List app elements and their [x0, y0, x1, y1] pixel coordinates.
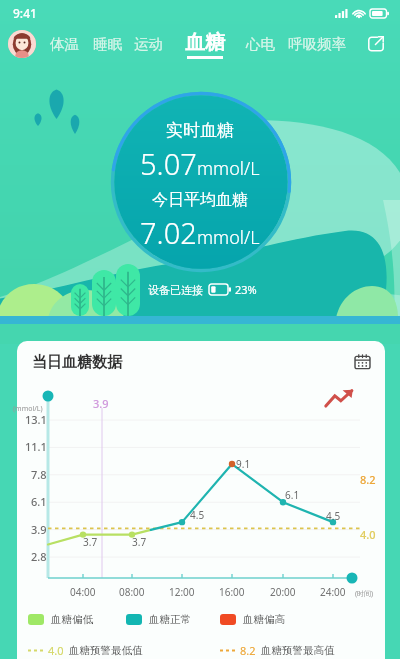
staticText: 08:00	[119, 585, 145, 599]
staticText: 11.1	[25, 439, 47, 454]
staticText: 24:00	[320, 585, 346, 599]
staticText: 5.07	[140, 144, 197, 183]
staticText: mmol/L	[197, 156, 260, 181]
button[interactable]: 血糖正常	[126, 613, 191, 626]
staticText: 心电	[246, 35, 275, 53]
staticText: 运动	[134, 35, 163, 53]
button[interactable]: 8.2	[220, 643, 335, 657]
staticText: 8.2	[360, 472, 376, 487]
staticText: 血糖预警最低值	[69, 644, 143, 657]
staticText: 血糖预警最高值	[261, 644, 335, 657]
staticText: (mmol/L)	[13, 404, 43, 414]
staticText: 3.9	[31, 522, 47, 537]
staticText: 23%	[235, 282, 257, 297]
staticText: 实时血糖	[166, 120, 234, 141]
staticText: 16:00	[219, 585, 245, 599]
staticText: 血糖	[185, 30, 225, 55]
staticText: 6.1	[285, 488, 300, 502]
staticText: 血糖偏高	[243, 613, 285, 626]
staticText: 4.5	[326, 509, 341, 523]
staticText: 3.7	[132, 535, 147, 549]
staticText: 20:00	[270, 585, 296, 599]
staticText: mmol/L	[197, 225, 260, 250]
button[interactable]: Calendar	[350, 349, 374, 373]
staticText: 呼吸频率	[288, 35, 346, 53]
staticText: 8.2	[240, 643, 256, 657]
staticText: 4.0	[360, 527, 376, 542]
button[interactable]: 睡眠	[93, 35, 122, 53]
button[interactable]: 血糖偏低	[28, 613, 93, 626]
button[interactable]: 血糖偏高	[220, 613, 285, 626]
button[interactable]: 血糖	[185, 30, 225, 59]
staticText: 血糖正常	[149, 613, 191, 626]
button[interactable]: 4.0	[28, 643, 143, 657]
staticText: 睡眠	[93, 35, 122, 53]
staticText: 血糖偏低	[51, 613, 93, 626]
staticText: 2.8	[31, 549, 47, 564]
button[interactable]: 心电	[246, 35, 275, 53]
button[interactable]: 体温	[50, 35, 79, 53]
staticText: 6.1	[31, 494, 47, 509]
staticText: 体温	[50, 35, 79, 53]
staticText: (时间)	[355, 589, 374, 599]
staticText: 7.8	[31, 467, 47, 482]
staticText: 9:41	[13, 5, 37, 21]
button[interactable]: Share	[363, 31, 389, 57]
button[interactable]: 运动	[134, 35, 163, 53]
staticText: 7.02	[140, 213, 197, 252]
button[interactable]: 呼吸频率	[288, 35, 346, 53]
staticText: 13.1	[25, 412, 47, 427]
staticText: 4.0	[48, 643, 64, 657]
staticText: 3.7	[83, 535, 98, 549]
staticText: 今日平均血糖	[152, 190, 248, 210]
button[interactable]: Profile	[8, 30, 36, 58]
staticText: 04:00	[70, 585, 96, 599]
staticText: 3.9	[93, 396, 109, 411]
staticText: 12:00	[169, 585, 195, 599]
staticText: 设备已连接	[148, 283, 203, 297]
staticText: 9.1	[236, 457, 251, 471]
staticText: 当日血糖数据	[32, 353, 122, 372]
staticText: 4.5	[190, 508, 205, 522]
